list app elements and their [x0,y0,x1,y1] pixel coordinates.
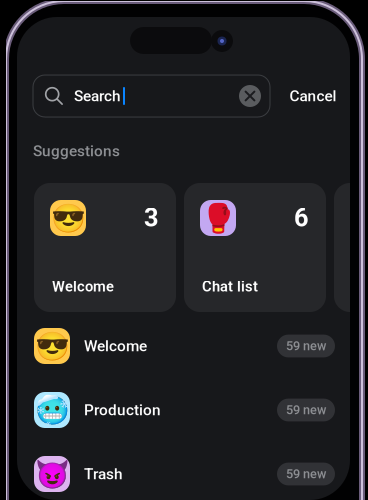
staticText: 59 new [286,467,326,481]
staticText: 😈 [34,458,69,490]
button[interactable]: 📦 [334,183,368,312]
staticText: Welcome [52,278,114,295]
staticText: Welcome [84,337,147,355]
button[interactable]: 😈 [17,442,350,500]
staticText: Cancel [289,87,336,105]
staticText: 3 [144,203,159,233]
staticText: Trash [84,465,123,483]
staticText: 🥶 [34,394,69,426]
button[interactable]: 😎 [17,314,350,378]
button[interactable]: Clear search [235,81,265,111]
button[interactable]: 🥊 [184,183,326,312]
staticText: 59 new [286,403,326,417]
staticText: 😎 [50,202,85,234]
staticText: 📦 [350,202,368,234]
staticText: Search [74,87,121,105]
staticText: 😎 [34,330,69,362]
staticText: 🥊 [200,202,235,234]
staticText: 6 [294,203,309,233]
button[interactable]: Cancel [282,75,344,117]
staticText: Suggestions [33,142,120,160]
staticText: Archive [352,278,368,295]
staticText: Chat list [202,278,258,295]
button[interactable]: 🥶 [17,378,350,442]
staticText: Production [84,401,161,419]
staticText: 59 new [286,339,326,353]
button[interactable]: 😎 [34,183,176,312]
